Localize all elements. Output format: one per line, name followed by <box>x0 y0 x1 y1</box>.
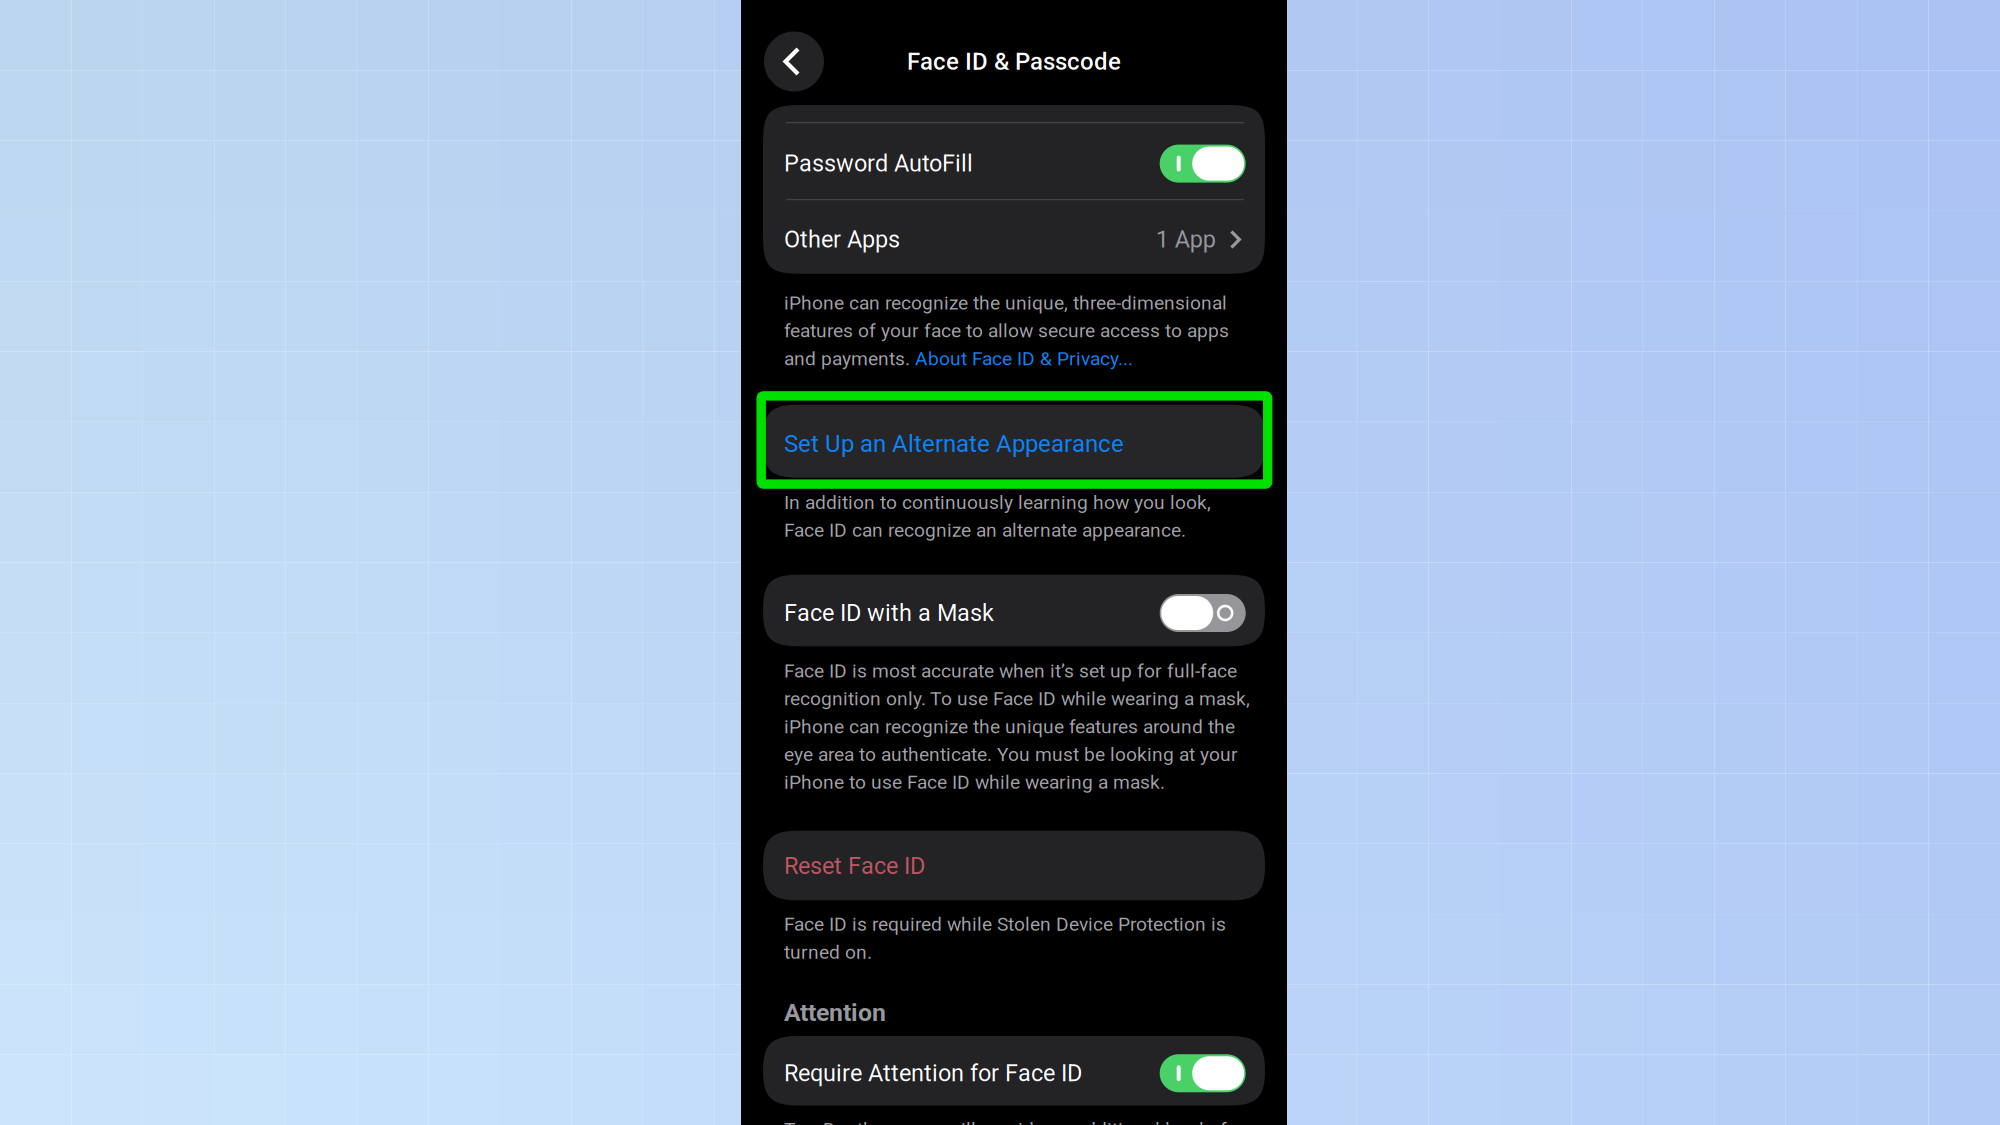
staticText: Face ID is required while Stolen Device … <box>784 913 1226 936</box>
staticText: recognition only. To use Face ID while w… <box>784 687 1250 710</box>
button[interactable]: Set Up an Alternate Appearance <box>763 405 1265 478</box>
staticText: Password AutoFill <box>784 150 973 177</box>
button[interactable]: Reset Face ID <box>763 831 1265 900</box>
staticText: and payments. <box>784 347 915 370</box>
staticText: Face ID with a Mask <box>784 599 994 627</box>
staticText: iPhone can recognize the unique, three-d… <box>784 292 1227 314</box>
button[interactable]: Password AutoFill <box>763 123 1265 199</box>
button[interactable]: Other Apps <box>763 200 1265 274</box>
staticText: iPhone can recognize the unique features… <box>784 715 1235 738</box>
staticText: Reset Face ID <box>784 852 925 880</box>
staticText: iPhone to use Face ID while wearing a ma… <box>784 771 1165 793</box>
staticText: turned on. <box>784 941 872 963</box>
staticText: eye area to authenticate. You must be lo… <box>784 743 1238 766</box>
staticText: In addition to continuously learning how… <box>784 491 1211 514</box>
staticText: Other Apps <box>784 226 900 253</box>
staticText: Face ID is most accurate when it’s set u… <box>784 660 1237 682</box>
staticText: Set Up an Alternate Appearance <box>784 430 1124 458</box>
staticText: 1 App <box>1156 226 1216 253</box>
staticText: Attention <box>784 998 886 1027</box>
staticText: features of your face to allow secure ac… <box>784 320 1229 342</box>
staticText: TrueDepth camera will provide an additio… <box>784 1118 1227 1125</box>
staticText: About Face ID & Privacy... <box>915 347 1133 370</box>
staticText: Face ID & Passcode <box>907 47 1121 75</box>
button[interactable]: Back <box>764 31 824 91</box>
staticText: Require Attention for Face ID <box>784 1059 1082 1087</box>
staticText: Face ID can recognize an alternate appea… <box>784 519 1186 541</box>
